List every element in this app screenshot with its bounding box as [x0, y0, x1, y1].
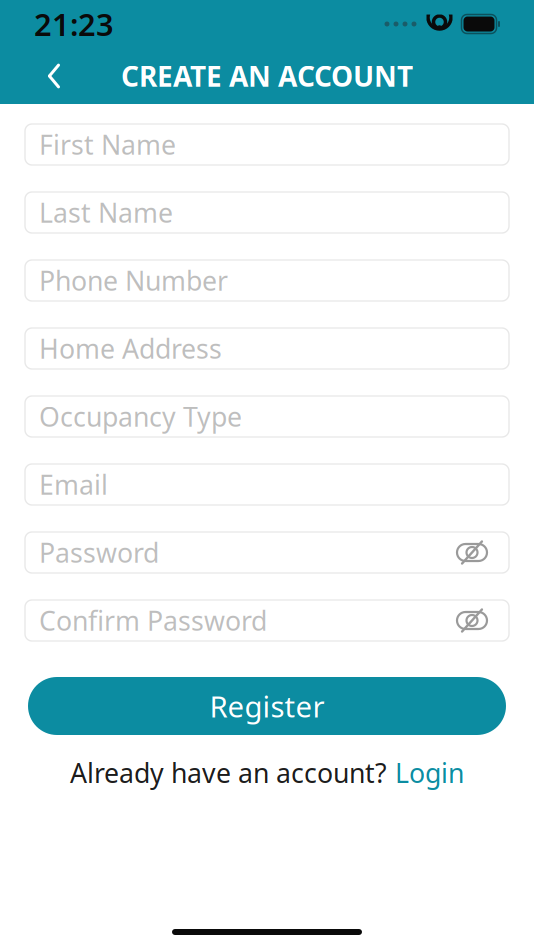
staticText: Confirm Password [39, 603, 267, 638]
staticText: Last Name [39, 195, 173, 230]
staticText: Home Address [39, 331, 222, 366]
staticText: Phone Number [39, 263, 228, 298]
button[interactable]: Show Confirm Password [449, 603, 495, 637]
staticText: 21:23 [34, 4, 114, 44]
staticText: Register [209, 686, 324, 725]
staticText: Email [39, 467, 108, 502]
button[interactable]: Show Password [449, 535, 495, 569]
staticText: Occupancy Type [39, 399, 242, 434]
staticText: Already have an account? [70, 755, 387, 790]
button[interactable]: Back [26, 50, 82, 102]
button[interactable]: Register [28, 677, 506, 735]
button[interactable]: Login [395, 755, 464, 790]
staticText: Password [39, 535, 159, 570]
staticText: First Name [39, 127, 176, 162]
staticText: Login [395, 755, 464, 790]
staticText: CREATE AN ACCOUNT [121, 57, 413, 95]
